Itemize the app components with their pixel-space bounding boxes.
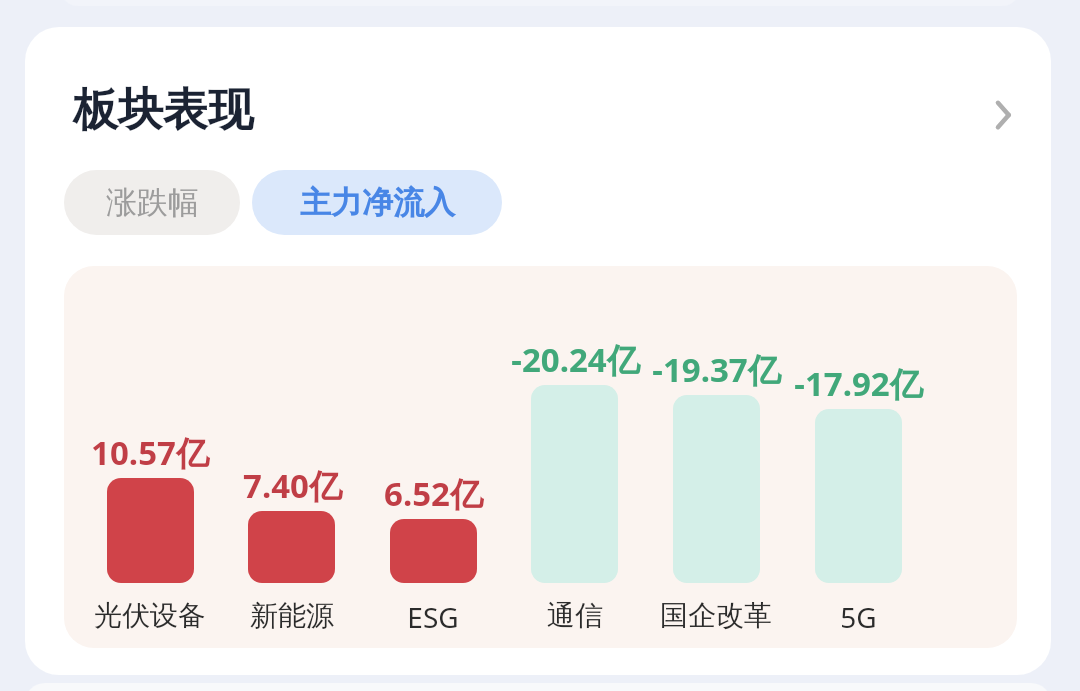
button[interactable]: 涨跌幅 xyxy=(64,170,240,235)
staticText: 10.57亿 xyxy=(91,430,209,475)
button[interactable]: 主力净流入 xyxy=(252,170,502,235)
staticText: 光伏设备 xyxy=(94,598,206,633)
button[interactable] xyxy=(248,511,335,583)
button[interactable] xyxy=(673,395,760,583)
staticText: -20.24亿 xyxy=(511,337,640,382)
staticText: 板块表现 xyxy=(73,82,253,139)
button[interactable] xyxy=(815,409,902,583)
button[interactable] xyxy=(531,385,618,583)
staticText: 新能源 xyxy=(250,598,334,633)
button[interactable]: 查看全部板块表现 xyxy=(970,82,1036,148)
staticText: 7.40亿 xyxy=(243,463,342,508)
staticText: -19.37亿 xyxy=(652,347,781,392)
staticText: 5G xyxy=(840,598,877,636)
staticText: 6.52亿 xyxy=(384,471,483,516)
staticText: ESG xyxy=(407,598,459,636)
staticText: 国企改革 xyxy=(660,598,772,633)
staticText: 通信 xyxy=(547,598,603,633)
staticText: 涨跌幅 xyxy=(106,183,199,222)
staticText: -17.92亿 xyxy=(794,361,923,406)
button[interactable] xyxy=(107,478,194,583)
staticText: 主力净流入 xyxy=(300,183,455,222)
button[interactable] xyxy=(390,519,477,583)
